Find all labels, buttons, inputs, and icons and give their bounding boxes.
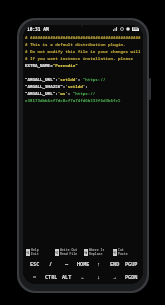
button[interactable]: — (59, 258, 75, 268)
staticText: ~ (33, 273, 37, 280)
button[interactable]: ESC (27, 258, 43, 268)
staticText: ↓ (97, 273, 101, 280)
button[interactable]: END (107, 258, 123, 268)
staticText: Exit (31, 252, 39, 256)
staticText: CTRL (45, 273, 58, 280)
staticText: PGDN (125, 273, 138, 280)
staticText: 89% (133, 27, 138, 31)
staticText: # If you want instance installation, ple… (25, 56, 141, 62)
staticText: Help (31, 248, 39, 252)
staticText: END (110, 260, 120, 267)
staticText: Cut (118, 248, 124, 252)
button[interactable]: PGDN (123, 271, 139, 281)
staticText: ↑ (97, 260, 101, 267)
staticText: Replace (89, 252, 103, 256)
button[interactable]: ↑ (91, 258, 107, 268)
button[interactable]: Where Is Replace (84, 248, 111, 256)
staticText: Read File (60, 252, 78, 256)
staticText: ← (81, 273, 85, 280)
staticText: ^O (55, 251, 59, 255)
staticText: # ######################################… (25, 35, 141, 41)
button[interactable]: Help Exit (26, 248, 53, 256)
button[interactable]: / (43, 258, 59, 268)
staticText: Write Out (60, 248, 78, 252)
button[interactable]: CTRL (43, 271, 59, 281)
staticText: Where Is (89, 248, 105, 252)
staticText: ESC (30, 260, 40, 267)
staticText: "ARGALL_URL":'ws': "https://raw.githubus… (25, 91, 141, 97)
button[interactable]: ↓ (91, 271, 107, 281)
button[interactable]: ← (75, 271, 91, 281)
staticText: e38173dbb6ef7dc8cf7a74fd6b333f6d3b6fc5 (25, 98, 121, 104)
staticText: "ARGALL_SHA256":'setldd': "9abb6ed3ef8f3… (25, 84, 141, 90)
staticText: ^G (26, 251, 30, 255)
button[interactable]: ALT (59, 271, 75, 281)
staticText: ^K (113, 251, 117, 255)
staticText: — (65, 260, 69, 267)
staticText: # Do not modify this file in your change… (25, 49, 141, 55)
staticText: HOME (77, 260, 90, 267)
staticText: / (49, 260, 53, 267)
staticText: ALT (62, 273, 72, 280)
staticText: EXTRA_NAME="Porrodin" (25, 63, 78, 69)
button[interactable]: ~ (27, 271, 43, 281)
staticText: → (113, 273, 117, 280)
button[interactable]: PGUP (123, 258, 139, 268)
button[interactable]: → (107, 271, 123, 281)
button[interactable]: Cut Paste (113, 248, 140, 256)
button[interactable]: Write Out Read File (55, 248, 82, 256)
staticText: 10:31 AM (27, 26, 49, 32)
staticText: # This is a default distribution plugin. (25, 42, 126, 48)
staticText: "ARGALL_URL":'setldd': "https://raw.gith… (25, 77, 141, 83)
staticText: Paste (118, 252, 128, 256)
staticText: ^W (84, 251, 88, 255)
button[interactable]: HOME (75, 258, 91, 268)
staticText: PGUP (125, 260, 138, 267)
